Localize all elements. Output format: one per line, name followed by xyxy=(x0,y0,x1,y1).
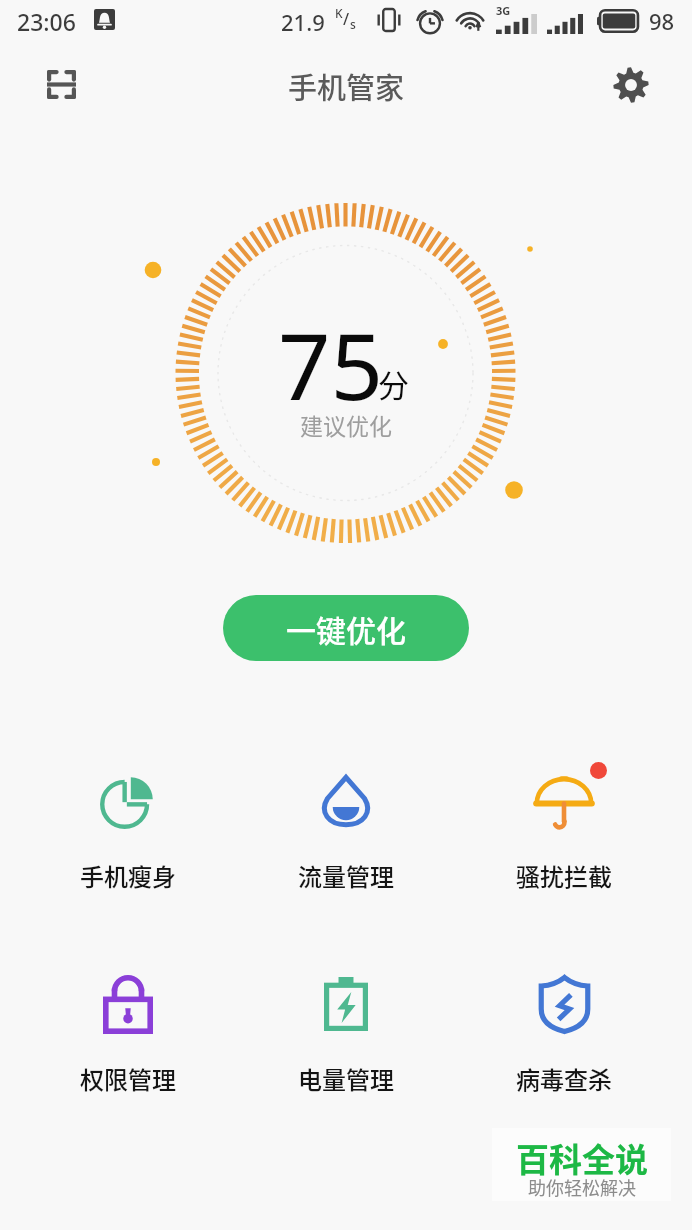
staticText: / xyxy=(343,8,350,30)
staticText: 电量管理 xyxy=(298,1061,394,1096)
button[interactable]: 流量管理 xyxy=(256,770,436,893)
staticText: 一键优化 xyxy=(286,607,406,650)
staticText: 3G xyxy=(496,3,511,18)
staticText: 21.9 xyxy=(281,7,325,37)
button[interactable]: 病毒查杀 xyxy=(474,973,654,1096)
staticText: 骚扰拦截 xyxy=(516,858,612,893)
button[interactable]: 骚扰拦截 xyxy=(474,770,654,893)
staticText: 23:06 xyxy=(17,6,76,37)
staticText: K xyxy=(335,5,343,21)
staticText: 手机管家 xyxy=(288,65,405,107)
staticText: 75 xyxy=(278,302,384,427)
staticText: 手机瘦身 xyxy=(80,858,176,893)
staticText: 百科全说 xyxy=(516,1134,648,1182)
button[interactable]: 手机瘦身 xyxy=(38,770,218,893)
staticText: 权限管理 xyxy=(80,1061,176,1096)
staticText: 流量管理 xyxy=(298,858,394,893)
staticText: 分 xyxy=(378,361,409,406)
staticText: 建议优化 xyxy=(300,408,392,441)
button[interactable]: Settings xyxy=(604,58,657,111)
button[interactable]: 权限管理 xyxy=(38,973,218,1096)
staticText: 98 xyxy=(649,6,675,36)
staticText: 助你轻松解决 xyxy=(528,1174,636,1200)
button[interactable]: 电量管理 xyxy=(256,973,436,1096)
button[interactable]: Scan xyxy=(35,58,88,111)
button[interactable]: 一键优化 xyxy=(223,595,469,661)
staticText: s xyxy=(350,16,356,32)
staticText: 病毒查杀 xyxy=(516,1061,612,1096)
